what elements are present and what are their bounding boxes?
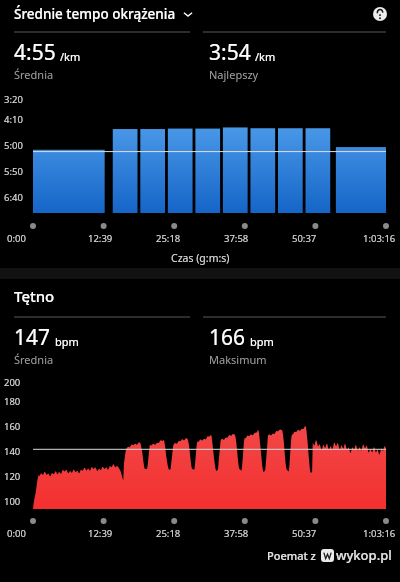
staticText: 3:54 [209,38,251,67]
staticText: 120 [4,470,21,483]
staticText: Poemat z [267,548,316,563]
staticText: /km [60,49,81,64]
staticText: 50:37 [292,527,317,540]
staticText: 4:10 [4,113,23,126]
staticText: bpm [250,334,274,349]
staticText: /km [255,49,276,64]
staticText: 12:39 [88,232,113,245]
staticText: 37:58 [224,527,249,540]
staticText: wykop.pl [336,546,392,564]
staticText: 166 [209,323,246,352]
staticText: Średnia [14,67,54,82]
staticText: Maksimum [209,352,267,367]
staticText: 5:00 [4,139,23,152]
staticText: Średnie tempo okrążenia [14,5,176,23]
staticText: bpm [55,334,79,349]
staticText: 50:37 [292,232,317,245]
staticText: 140 [4,445,21,458]
staticText: 160 [4,420,21,433]
staticText: 4:55 [14,38,56,67]
staticText: 25:18 [156,232,181,245]
staticText: 37:58 [224,232,249,245]
staticText: 5:50 [4,165,23,178]
staticText: 1:03:16 [363,527,396,540]
staticText: 0:00 [7,527,26,540]
button[interactable]: 4:55 [14,33,200,86]
staticText: Tętno [14,286,55,306]
staticText: Najlepszy [209,67,259,82]
staticText: 1:03:16 [363,232,396,245]
button[interactable]: Help [370,4,390,24]
staticText: 100 [4,495,21,508]
button[interactable]: Tętno [0,279,400,313]
button[interactable]: 147 [14,318,200,371]
staticText: 12:39 [88,527,113,540]
staticText: Czas (g:m:s) [171,251,230,265]
staticText: 180 [4,395,21,408]
button[interactable]: 166 [209,318,400,371]
staticText: 25:18 [156,527,181,540]
button[interactable]: Średnie tempo okrążenia [0,0,400,28]
staticText: Średnia [14,352,54,367]
staticText: 6:40 [4,191,23,204]
button[interactable]: 3:54 [209,33,400,86]
staticText: 0:00 [7,232,26,245]
staticText: 147 [14,323,51,352]
staticText: 200 [4,376,21,389]
staticText: 3:20 [4,93,23,106]
